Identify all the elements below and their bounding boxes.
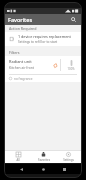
- button[interactable]: 1 device requires replacement: [5, 32, 81, 46]
- staticText: Kitchen air front: [9, 65, 35, 69]
- staticText: Action Required: [9, 26, 37, 31]
- button[interactable]: All: [5, 151, 31, 163]
- staticText: no fragrance: [14, 77, 33, 81]
- staticText: Favorites: [38, 158, 50, 162]
- staticText: Filters: [9, 50, 20, 55]
- staticText: Favorites: [8, 16, 33, 23]
- button[interactable]: Back: [17, 165, 26, 174]
- button[interactable]: Recents: [60, 165, 69, 174]
- staticText: All: [16, 158, 20, 162]
- button[interactable]: Home: [39, 165, 48, 174]
- staticText: Settings to refill or to start: [18, 40, 58, 44]
- button[interactable]: Search: [69, 15, 78, 24]
- staticText: Settings: [63, 158, 74, 162]
- staticText: Radiant unit: [9, 59, 32, 64]
- staticText: 1 device requires replacement: [18, 34, 72, 39]
- button[interactable]: Radiant unit: [5, 56, 81, 82]
- button[interactable]: Settings: [56, 151, 81, 163]
- button[interactable]: Favorites: [31, 151, 56, 163]
- staticText: 100%: [67, 67, 75, 71]
